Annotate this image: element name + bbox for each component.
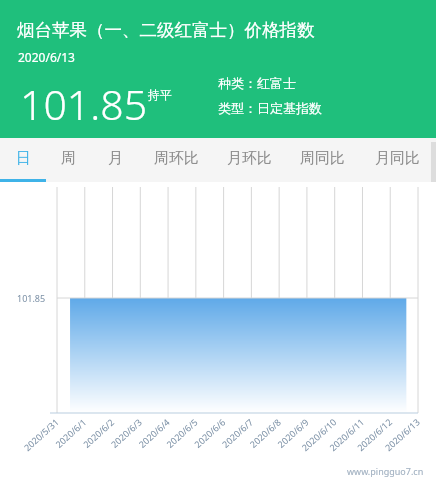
staticText: 2020/6/13: [18, 49, 75, 65]
staticText: 周同比: [300, 149, 345, 168]
staticText: 种类：红富士: [218, 75, 296, 91]
button[interactable]: 周环比: [140, 138, 213, 182]
button[interactable]: 月同比: [359, 138, 436, 182]
staticText: 101.85: [20, 76, 148, 132]
staticText: 月环比: [227, 149, 272, 168]
staticText: 日: [16, 149, 31, 168]
button[interactable]: 周同比: [286, 138, 359, 182]
button[interactable]: 周: [46, 138, 91, 182]
button[interactable]: 月环比: [213, 138, 286, 182]
button[interactable]: 日: [0, 138, 46, 182]
staticText: 烟台苹果（一、二级红富士）价格指数: [17, 19, 315, 41]
staticText: 月: [108, 149, 123, 168]
staticText: 周: [61, 149, 76, 168]
button[interactable]: 月: [91, 138, 140, 182]
staticText: 持平: [148, 87, 172, 102]
staticText: 周环比: [154, 149, 199, 168]
staticText: 类型：日定基指数: [218, 100, 322, 116]
staticText: 月同比: [375, 149, 420, 168]
